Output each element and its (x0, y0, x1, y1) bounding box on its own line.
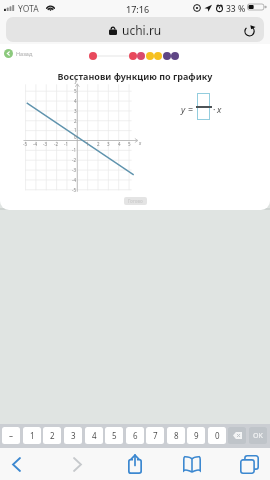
staticText: -4 (72, 177, 77, 183)
staticText: -5 (23, 141, 28, 147)
staticText: y (181, 103, 186, 115)
staticText: – (9, 430, 13, 441)
staticText: uchi.ru (122, 22, 162, 38)
button[interactable]: 8 (167, 427, 185, 444)
staticText: -2 (72, 157, 77, 163)
staticText: OK (253, 431, 263, 441)
button[interactable]: Backspace (228, 427, 246, 444)
button[interactable]: 1 (23, 427, 41, 444)
staticText: 6 (133, 430, 138, 441)
button[interactable] (197, 93, 210, 107)
staticText: 1 (86, 141, 89, 147)
button[interactable]: 4 (85, 427, 103, 444)
staticText: 4 (92, 430, 97, 441)
button[interactable]: 2 (43, 427, 61, 444)
staticText: 8 (174, 430, 179, 441)
button[interactable]: Back (0, 448, 42, 480)
staticText: 5 (74, 88, 77, 94)
staticText: = (188, 103, 194, 115)
staticText: 5 (112, 430, 117, 441)
button[interactable] (197, 107, 210, 120)
staticText: 5 (128, 141, 131, 147)
staticText: 4 (118, 141, 121, 147)
staticText: Готово (128, 198, 143, 204)
staticText: y (75, 78, 78, 84)
staticText: Восстанови функцию по графику (0, 70, 270, 82)
staticText: 0 (74, 134, 77, 140)
button[interactable]: 6 (126, 427, 144, 444)
staticText: -5 (72, 187, 77, 193)
staticText: -4 (33, 141, 38, 147)
staticText: · (213, 103, 216, 115)
staticText: -1 (64, 141, 69, 147)
staticText: x (217, 103, 222, 115)
button[interactable]: 9 (187, 427, 205, 444)
staticText: 3 (107, 141, 110, 147)
staticText: x (139, 140, 142, 146)
staticText: 1 (74, 127, 77, 133)
staticText: 2 (74, 118, 77, 124)
button[interactable]: Forward (56, 448, 98, 480)
button[interactable]: 7 (146, 427, 164, 444)
staticText: 9 (194, 430, 199, 441)
button[interactable]: 5 (105, 427, 123, 444)
button[interactable]: Reload (241, 21, 259, 39)
staticText: 2 (50, 430, 55, 441)
staticText: 3 (71, 430, 76, 441)
staticText: 7 (153, 430, 158, 441)
staticText: -3 (72, 167, 77, 173)
button[interactable]: Назад (4, 49, 33, 58)
staticText: 3 (74, 108, 77, 114)
button[interactable]: Tabs (228, 448, 270, 480)
button[interactable]: uchi.ru (6, 17, 264, 42)
staticText: 2 (97, 141, 100, 147)
button[interactable]: Bookmarks (171, 448, 213, 480)
staticText: YOTA (18, 3, 39, 15)
button[interactable]: 0 (208, 427, 226, 444)
button[interactable]: Готово (124, 197, 147, 205)
button[interactable]: 3 (64, 427, 82, 444)
button[interactable]: OK (249, 427, 267, 444)
button[interactable]: – (2, 427, 20, 444)
staticText: Назад (16, 50, 33, 57)
staticText: 1 (30, 430, 35, 441)
staticText: -1 (72, 147, 77, 153)
staticText: 17:16 (126, 3, 150, 15)
button[interactable]: Share (114, 448, 156, 480)
staticText: 4 (74, 98, 77, 104)
staticText: 33 % (226, 3, 246, 15)
staticText: 0 (215, 430, 220, 441)
staticText: -2 (54, 141, 59, 147)
staticText: -3 (43, 141, 48, 147)
